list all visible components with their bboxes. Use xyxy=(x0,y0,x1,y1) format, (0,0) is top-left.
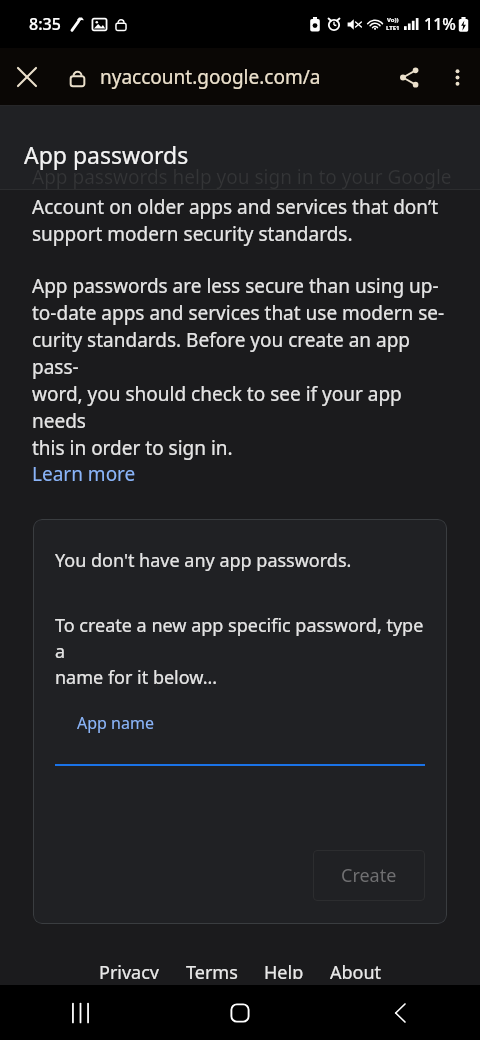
button[interactable]: About xyxy=(317,954,395,985)
staticText: LTE1 xyxy=(386,24,400,32)
button[interactable]: Share xyxy=(384,52,434,102)
button[interactable]: Recents xyxy=(0,985,160,1040)
button[interactable]: Learn more xyxy=(32,461,136,487)
button[interactable]: Privacy xyxy=(86,954,173,985)
button[interactable]: Terms xyxy=(173,954,251,985)
staticText: To create a new app specific password, t… xyxy=(55,613,425,690)
button[interactable]: App name xyxy=(55,712,425,766)
staticText: You don't have any app passwords. xyxy=(55,548,352,573)
staticText: App passwords help you sign in to your G… xyxy=(32,164,452,190)
staticText: 8:35 xyxy=(29,13,61,35)
button[interactable]: Site information xyxy=(54,54,100,100)
button[interactable]: Create xyxy=(313,850,425,901)
staticText: App passwords xyxy=(24,139,189,170)
button[interactable]: Help xyxy=(251,954,317,985)
staticText: Account on older apps and services that … xyxy=(32,194,439,247)
button[interactable]: Home xyxy=(160,985,320,1040)
staticText: Learn more xyxy=(32,461,136,487)
staticText: Vo)) xyxy=(387,16,399,24)
staticText: App passwords are less secure than using… xyxy=(32,273,448,461)
button[interactable]: nyaccount.google.com/a xyxy=(100,48,384,106)
button[interactable]: Back xyxy=(320,985,480,1040)
staticText: nyaccount.google.com/a xyxy=(100,64,321,90)
staticText: About xyxy=(330,960,382,979)
staticText: Privacy xyxy=(99,960,160,979)
button[interactable]: Close tab xyxy=(0,50,54,104)
staticText: Create xyxy=(341,863,397,888)
staticText: Help xyxy=(264,960,304,979)
button[interactable]: More options xyxy=(434,54,480,100)
staticText: App name xyxy=(77,712,154,734)
staticText: Terms xyxy=(186,960,238,979)
staticText: 11% xyxy=(424,13,456,35)
